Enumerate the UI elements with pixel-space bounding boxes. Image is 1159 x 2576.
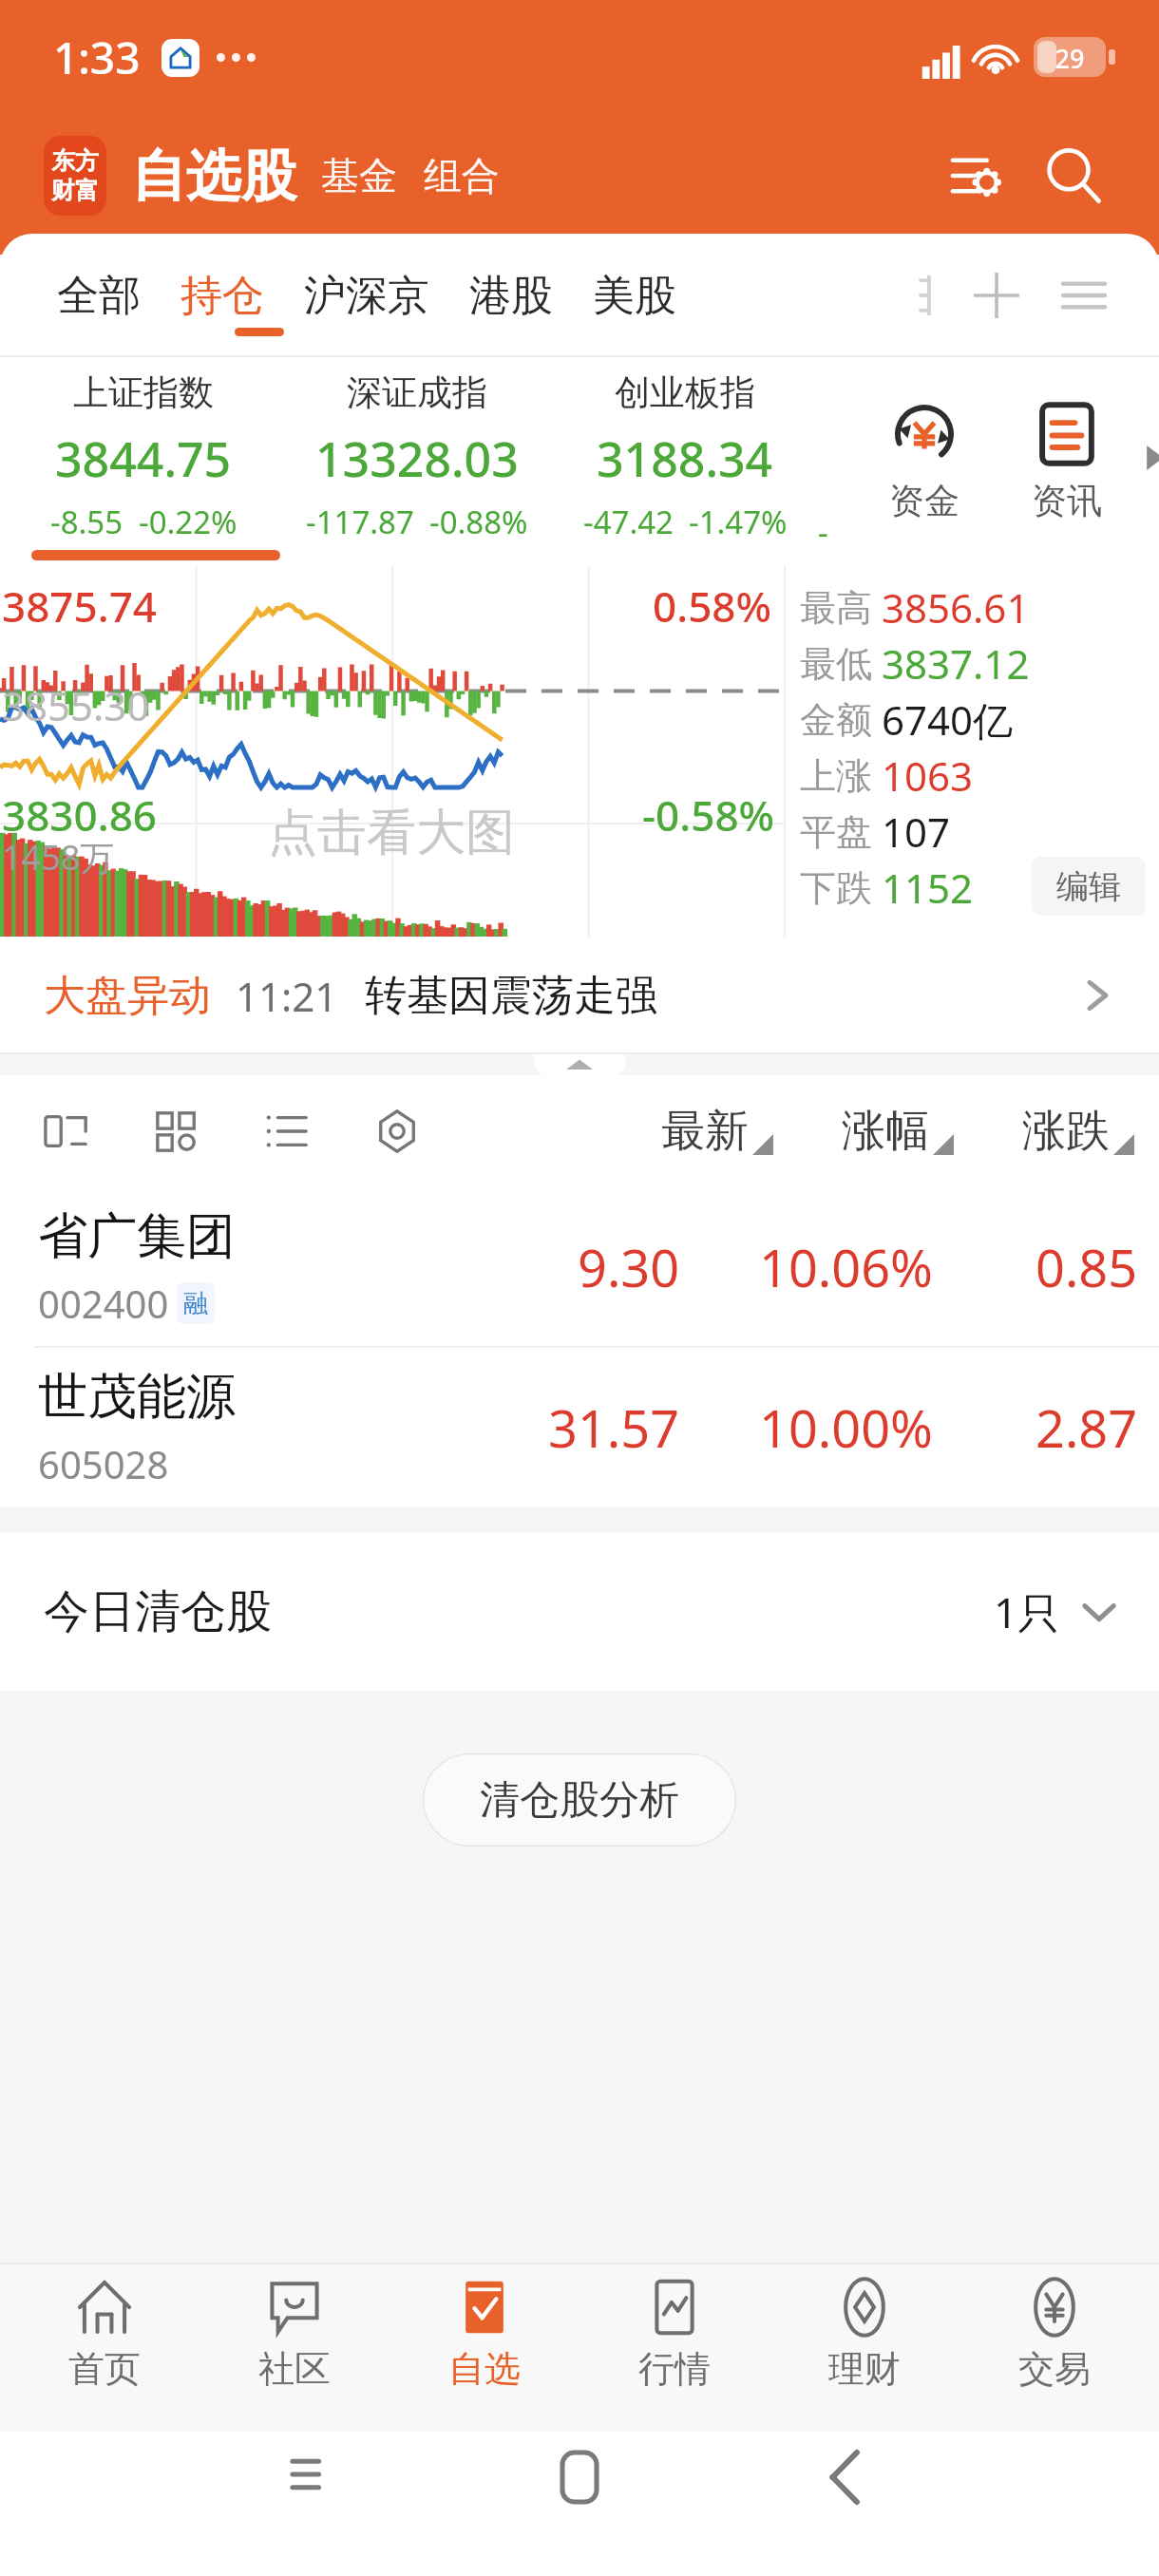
button[interactable]: 省广集团 [0, 1187, 1159, 1346]
staticText: 社区 [258, 2346, 331, 2392]
staticText: 9.30 [578, 1232, 680, 1302]
staticText: 最低 [800, 641, 872, 687]
staticText: 605028 [38, 1438, 169, 1489]
staticText: - [818, 511, 828, 554]
staticText: 3856.61 [882, 580, 1030, 635]
staticText: 29 [1037, 41, 1102, 73]
staticText: 3855.30 [2, 678, 150, 732]
button[interactable]: 资金 [853, 401, 996, 523]
button[interactable]: Recents [180, 2453, 446, 2496]
staticText: 持仓 [180, 270, 264, 322]
staticText: 涨幅 [842, 1104, 929, 1159]
button[interactable]: 全部 [42, 256, 156, 335]
staticText: -117.87 [306, 501, 414, 543]
button[interactable]: Add [963, 262, 1030, 329]
staticText: 今日清仓股 [44, 1583, 272, 1640]
staticText: 11:21 [236, 969, 338, 1023]
staticText: 上涨 [800, 753, 872, 799]
button[interactable]: 自选 [399, 2276, 570, 2392]
staticText: -0.58% [642, 786, 775, 843]
button[interactable]: 涨幅 [834, 1096, 961, 1166]
staticText: 3875.74 [2, 578, 157, 635]
staticText: 1只 [994, 1583, 1060, 1640]
button[interactable]: 编辑 [1032, 857, 1146, 916]
staticText: 10.00% [759, 1392, 933, 1463]
staticText: 6740亿 [882, 692, 1014, 747]
button[interactable]: Focus [365, 1099, 429, 1164]
staticText: 金额 [800, 697, 872, 743]
staticText: 平盘 [800, 809, 872, 855]
staticText: 资讯 [1032, 479, 1102, 523]
staticText: 1063 [882, 748, 974, 803]
staticText: 创业板指 [615, 370, 755, 415]
staticText: 首页 [68, 2346, 141, 2392]
button[interactable]: 沪深京 [289, 256, 445, 335]
button[interactable]: Settings [935, 136, 1015, 216]
button[interactable]: Menu [1051, 262, 1117, 329]
button[interactable]: 社区 [209, 2276, 380, 2392]
staticText: 0.85 [1035, 1232, 1138, 1302]
staticText: 美股 [593, 270, 676, 322]
staticText: 涨跌 [1022, 1104, 1110, 1159]
staticText: 点击看大图 [268, 802, 515, 864]
button[interactable]: Home [446, 2453, 712, 2502]
button[interactable]: Back [712, 2453, 978, 2502]
staticText: 清仓股分析 [480, 1775, 679, 1826]
staticText: 最新 [661, 1104, 749, 1159]
staticText: 融 [183, 1288, 208, 1319]
button[interactable]: Collapse [534, 1054, 625, 1075]
button[interactable]: 大盘异动 [0, 937, 1159, 1054]
staticText: 自选股 [131, 142, 296, 211]
button[interactable]: 涨跌 [1015, 1096, 1142, 1166]
button[interactable]: 世茂能源 [0, 1348, 1159, 1506]
button[interactable]: 理财 [779, 2276, 950, 2392]
staticText: 3844.75 [55, 426, 232, 491]
button[interactable]: 持仓 [165, 256, 279, 335]
staticText: 上证指数 [73, 370, 214, 415]
staticText: -1.47% [689, 501, 788, 543]
button[interactable]: 资讯 [996, 401, 1138, 523]
staticText: 2.87 [1035, 1392, 1138, 1463]
button[interactable]: List view [255, 1099, 319, 1164]
button[interactable]: 美股 [578, 256, 692, 335]
button[interactable]: Sort [899, 263, 963, 328]
staticText: 13328.03 [315, 426, 519, 491]
staticText: -8.55 [50, 501, 123, 543]
staticText: 港股 [469, 270, 553, 322]
staticText: 002400 [38, 1278, 169, 1329]
staticText: 转基因震荡走强 [365, 970, 657, 1022]
staticText: 基金 [321, 152, 397, 199]
staticText: 自选 [448, 2346, 521, 2392]
staticText: 1:33 [53, 28, 141, 87]
staticText: 1458万 [2, 834, 115, 881]
button[interactable]: 行情 [589, 2276, 760, 2392]
button[interactable]: 最新 [654, 1096, 781, 1166]
staticText: -0.88% [429, 501, 528, 543]
staticText: 资金 [889, 479, 959, 523]
button[interactable]: 交易 [969, 2276, 1140, 2392]
staticText: 省广集团 [38, 1205, 236, 1268]
staticText: 大盘异动 [44, 970, 211, 1022]
staticText: 行情 [638, 2346, 711, 2392]
button[interactable]: 港股 [454, 256, 568, 335]
staticText: 全部 [57, 270, 141, 322]
staticText: 世茂能源 [38, 1366, 236, 1429]
button[interactable]: 首页 [19, 2276, 190, 2392]
staticText: 107 [882, 805, 951, 859]
staticText: 组合 [424, 152, 500, 199]
staticText: 交易 [1018, 2346, 1091, 2392]
staticText: -47.42 [583, 501, 674, 543]
button[interactable]: 清仓股分析 [423, 1753, 736, 1847]
staticText: -0.22% [139, 501, 237, 543]
staticText: 深证成指 [347, 370, 487, 415]
button[interactable]: Search [1030, 132, 1117, 219]
staticText: 东方 [51, 146, 99, 176]
staticText: 理财 [828, 2346, 901, 2392]
staticText: 0.58% [653, 578, 771, 635]
staticText: 最高 [800, 585, 872, 631]
staticText: 3830.86 [2, 786, 157, 843]
button[interactable]: Grid view [144, 1099, 209, 1164]
button[interactable]: 今日清仓股 [0, 1533, 1159, 1691]
button[interactable]: Transfer [34, 1099, 99, 1164]
staticText: 编辑 [1056, 866, 1121, 907]
